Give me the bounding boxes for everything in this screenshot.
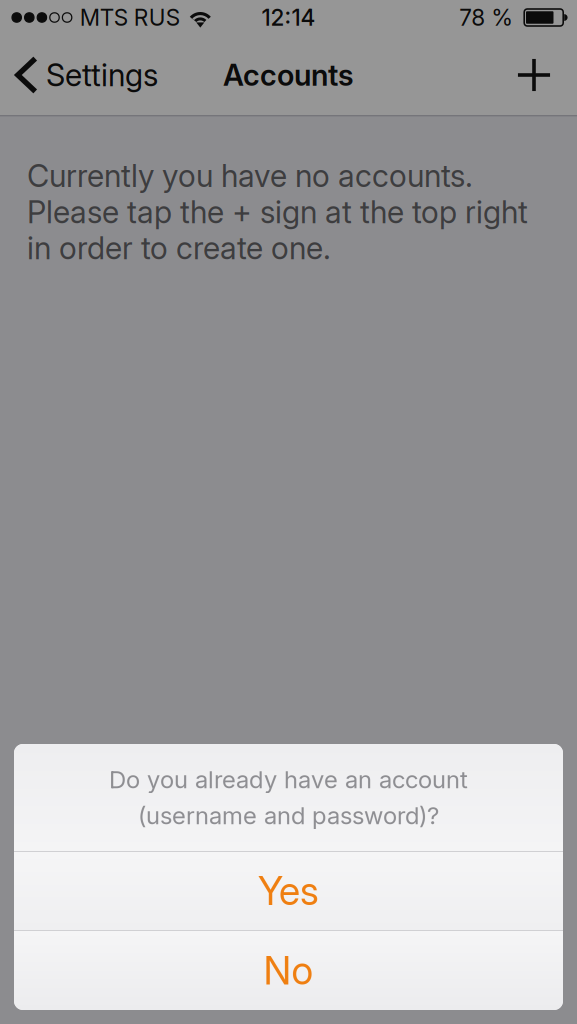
staticText: Yes bbox=[258, 868, 319, 914]
staticText: No bbox=[263, 947, 313, 994]
staticText: 12:14 bbox=[261, 4, 315, 31]
button[interactable]: Yes bbox=[14, 852, 563, 930]
button[interactable]: Add account bbox=[491, 35, 577, 115]
staticText: (username and password)? bbox=[138, 801, 439, 830]
staticText: Please tap the + sign at the top right bbox=[27, 193, 528, 231]
staticText: Settings bbox=[46, 56, 158, 93]
staticText: 78 % bbox=[459, 4, 513, 31]
button[interactable]: No bbox=[14, 931, 563, 1010]
staticText: MTS RUS bbox=[80, 4, 180, 31]
staticText: Do you already have an account bbox=[109, 765, 468, 794]
staticText: Currently you have no accounts. bbox=[27, 157, 473, 194]
staticText: Accounts bbox=[223, 57, 354, 93]
button[interactable]: Settings bbox=[0, 35, 172, 115]
staticText: in order to create one. bbox=[27, 230, 331, 267]
